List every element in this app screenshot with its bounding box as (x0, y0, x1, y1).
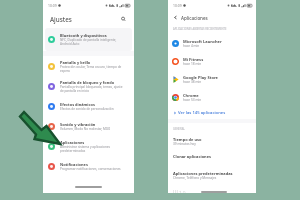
staticText: Pantalla principal bloqueada, temas, aju… (60, 85, 125, 93)
staticText: Aplicaciones (181, 15, 208, 21)
staticText: Chrome (183, 93, 199, 98)
button[interactable]: Bluetooth y dispositivos (45, 28, 132, 51)
staticText: Pantalla y brillo (60, 60, 91, 65)
button[interactable]: Google Play Store (168, 70, 256, 88)
button[interactable]: Pantalla y brillo (43, 56, 134, 76)
staticText: Protección ocular, Tema oscuro, tiempo d… (60, 65, 125, 73)
staticText: Aplicaciones predeterminadas (173, 171, 233, 176)
staticText: Aplicaciones (60, 140, 85, 145)
staticText: 39 minutos hoy (173, 142, 196, 146)
staticText: Clonar aplicaciones (173, 154, 212, 159)
staticText: Administrar sistema y aplicaciones prede… (60, 145, 125, 153)
staticText: Efectos de sonido de personalización (60, 107, 114, 111)
button[interactable]: Buscar (119, 15, 128, 24)
staticText: Bluetooth y dispositivos (60, 33, 107, 38)
staticText: hace 38 min (183, 80, 202, 84)
staticText: Chrome, Teléfono y Mensajes (173, 176, 217, 180)
staticText: Tiempo de uso (173, 137, 202, 142)
staticText: 10:09 (48, 3, 57, 8)
staticText: hace 18 min (183, 62, 202, 66)
staticText: Programar notificaciones, conversaciones (60, 167, 121, 171)
staticText: Efectos dinámicos (60, 102, 95, 107)
staticText: Volumen, Modo No molestar, MIUI (60, 127, 111, 131)
button[interactable]: Mi Fitness (168, 52, 256, 70)
staticText: Mi Fitness (183, 57, 204, 62)
button[interactable]: Pantalla de bloqueo y fondo (43, 76, 134, 96)
staticText: Sonido y vibración (60, 122, 96, 127)
staticText: GENERAL (173, 127, 185, 131)
button[interactable]: Chrome (168, 88, 256, 106)
button[interactable]: Notificaciones (43, 156, 134, 176)
staticText: Pantalla de bloqueo y fondo (60, 80, 115, 85)
button[interactable]: Tiempo de uso (168, 135, 256, 152)
button[interactable]: Aplicaciones predeterminadas (168, 169, 256, 186)
button[interactable]: Atrás (172, 14, 179, 21)
button[interactable]: Microsoft Launcher (168, 34, 256, 52)
button[interactable]: Efectos dinámicos (43, 96, 134, 116)
staticText: ||| < ○ (173, 190, 186, 193)
button[interactable]: Clonar aplicaciones (168, 152, 256, 169)
staticText: NFC, Duplicado de pantalla inteligente, … (60, 38, 123, 46)
staticText: APLICACIONES ABIERTAS RECIENTEMENTE (173, 27, 227, 31)
button[interactable]: Sonido y vibración (43, 116, 134, 136)
staticText: Microsoft Launcher (183, 39, 222, 44)
staticText: Ver las 145 aplicaciones (178, 110, 226, 116)
staticText: Notificaciones (60, 162, 88, 167)
staticText: hace 4 min (183, 44, 200, 48)
button[interactable]: Aplicaciones (43, 136, 134, 156)
staticText: 10:09 (173, 3, 182, 8)
staticText: Google Play Store (183, 75, 218, 80)
staticText: hace 53 min (183, 98, 202, 102)
button[interactable]: Ver las 145 aplicaciones (168, 106, 256, 119)
staticText: Ajustes (50, 15, 72, 24)
